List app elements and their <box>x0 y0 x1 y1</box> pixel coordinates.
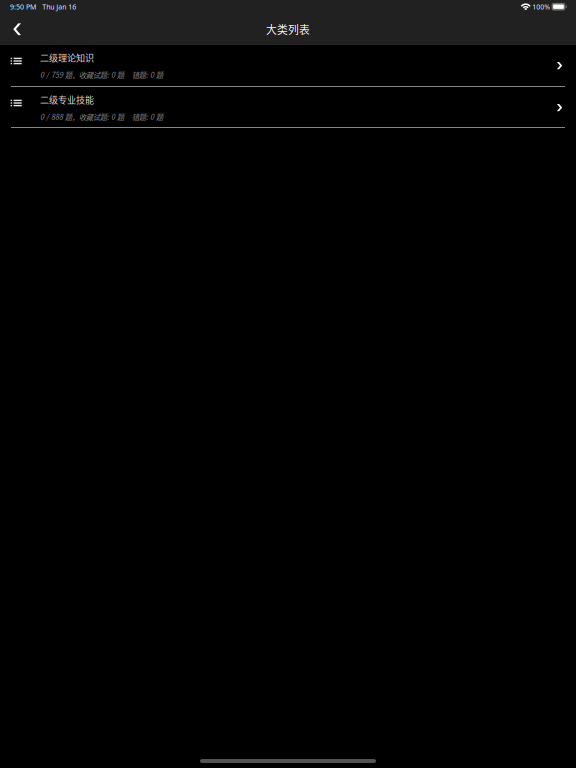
staticText: 0 / 759 题，收藏试题: 0 题 错题: 0 题 <box>40 69 163 80</box>
staticText: Thu Jan 16 <box>42 2 76 11</box>
staticText: 大类列表 <box>266 21 310 37</box>
staticText: 9:50 PM <box>10 2 36 11</box>
button[interactable]: 二级理论知识 <box>0 45 576 87</box>
staticText: 0 / 888 题，收藏试题: 0 题 错题: 0 题 <box>40 111 163 122</box>
staticText: 二级专业技能 <box>40 93 94 106</box>
staticText: 二级理论知识 <box>40 51 94 64</box>
button[interactable]: 二级专业技能 <box>0 87 576 128</box>
staticText: 100% <box>532 2 550 11</box>
button[interactable]: Back <box>0 13 41 45</box>
